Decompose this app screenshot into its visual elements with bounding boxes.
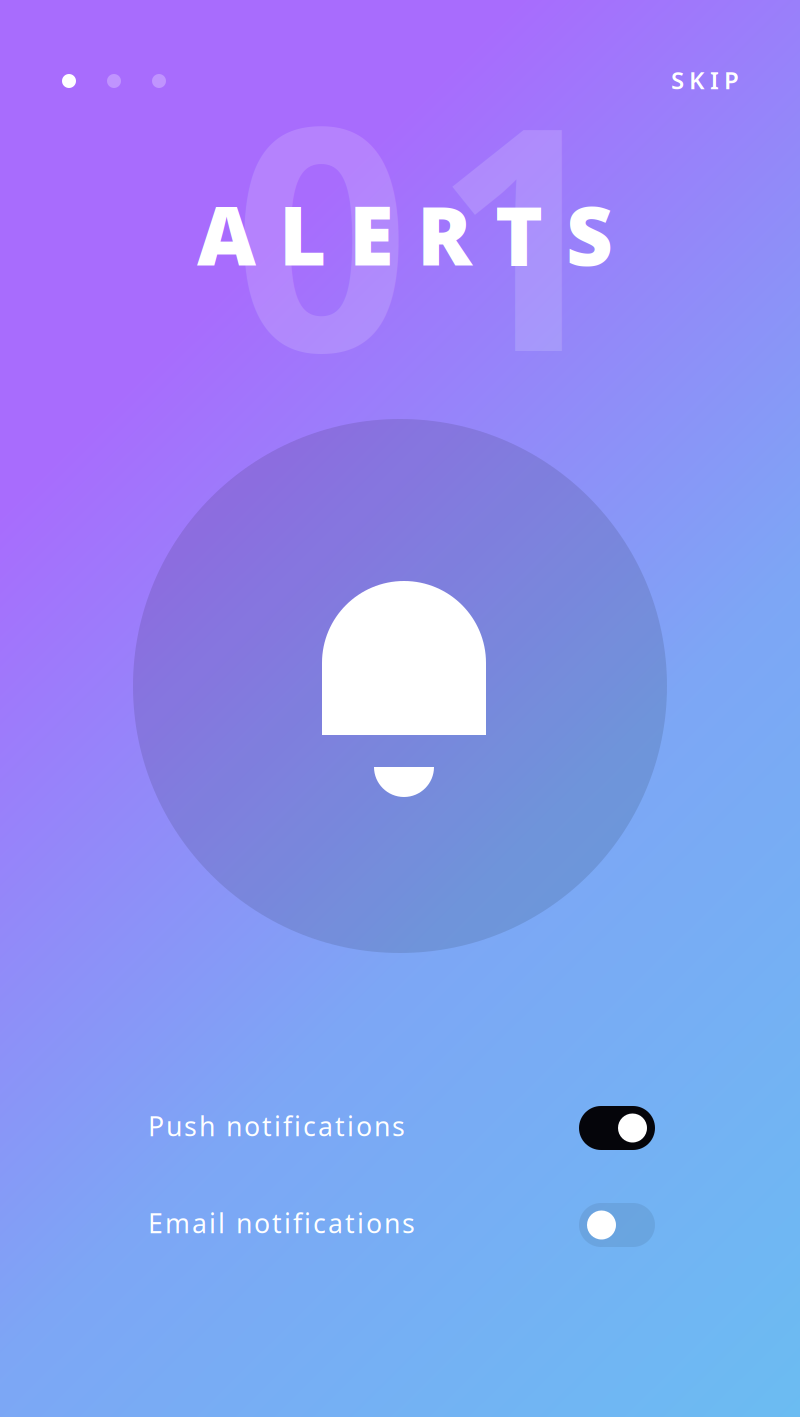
button[interactable]: SKIP xyxy=(671,56,781,104)
staticText: Email notifications xyxy=(148,1205,415,1241)
staticText: SKIP xyxy=(671,64,739,96)
staticText: Push notifications xyxy=(148,1108,405,1144)
button[interactable]: Push notifications xyxy=(565,1096,669,1160)
staticText: 01 xyxy=(233,26,611,436)
button[interactable]: Email notifications xyxy=(565,1193,669,1257)
staticText: ALERTS xyxy=(197,180,613,288)
